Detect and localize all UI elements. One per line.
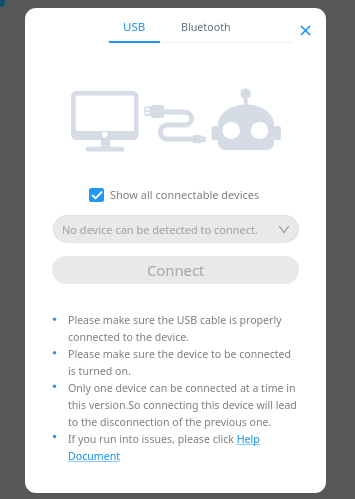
button[interactable]: Connect: [52, 256, 299, 284]
button[interactable]: Show all connectable devices: [89, 182, 260, 206]
staticText: Please make sure the USB cable is proper…: [68, 313, 313, 464]
button[interactable]: USB: [109, 14, 160, 40]
button[interactable]: No device can be detected to connect.: [53, 215, 299, 243]
staticText: No device can be detected to connect.: [62, 222, 258, 237]
button[interactable]: Bluetooth: [178, 14, 234, 40]
staticText: USB: [123, 19, 146, 35]
staticText: Connect: [147, 260, 205, 280]
staticText: Bluetooth: [181, 20, 231, 35]
button[interactable]: Help Document: [205, 438, 265, 470]
staticText: Show all connectable devices: [110, 187, 260, 202]
button[interactable]: Close: [291, 16, 319, 44]
